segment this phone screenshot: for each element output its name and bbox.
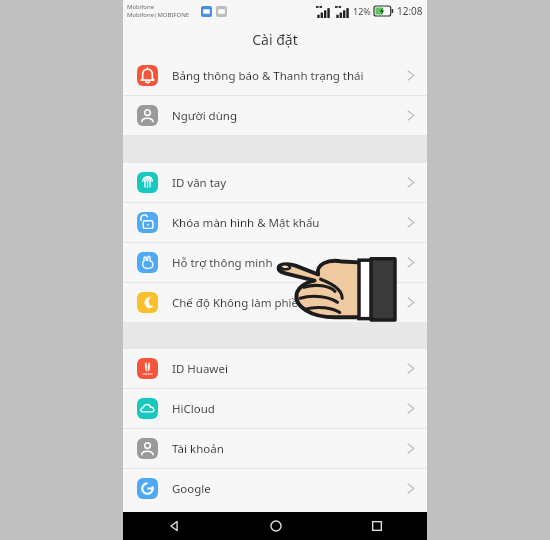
staticText: Google: [172, 481, 407, 497]
staticText: Bảng thông báo & Thanh trạng thái: [172, 68, 407, 84]
staticText: ID Huawei: [172, 361, 407, 377]
button[interactable]: Bảng thông báo & Thanh trạng thái: [123, 56, 427, 95]
staticText: 12:08: [397, 4, 423, 18]
staticText: ID vân tay: [172, 175, 407, 191]
staticText: Mobifone|MOBIFONE: [127, 11, 190, 19]
staticText: Cài đặt: [252, 30, 298, 49]
button[interactable]: Chế độ Không làm phiền: [123, 283, 427, 322]
button[interactable]: ID vân tay: [123, 163, 427, 202]
button[interactable]: HiCloud: [123, 389, 427, 428]
button[interactable]: ID Huawei: [123, 349, 427, 388]
button[interactable]: Tài khoản: [123, 429, 427, 468]
button[interactable]: Back: [123, 512, 225, 540]
button[interactable]: Hỗ trợ thông minh: [123, 243, 427, 282]
button[interactable]: Người dùng: [123, 96, 427, 135]
button[interactable]: Home: [225, 512, 326, 540]
button[interactable]: Recent apps: [326, 512, 427, 540]
staticText: Tài khoản: [172, 441, 407, 457]
staticText: Mobifone: [127, 3, 155, 11]
staticText: HiCloud: [172, 401, 407, 417]
button[interactable]: Khóa màn hình & Mật khẩu: [123, 203, 427, 242]
staticText: Hỗ trợ thông minh: [172, 255, 407, 271]
staticText: Người dùng: [172, 108, 407, 124]
staticText: Khóa màn hình & Mật khẩu: [172, 215, 407, 231]
staticText: 12%: [353, 5, 371, 17]
staticText: Chế độ Không làm phiền: [172, 295, 407, 311]
button[interactable]: Google: [123, 469, 427, 508]
